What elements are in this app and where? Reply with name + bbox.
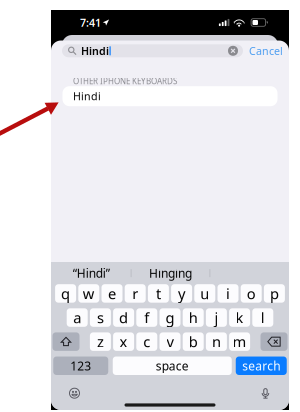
staticText: v <box>166 332 173 351</box>
button[interactable]: s <box>90 308 111 327</box>
button[interactable]: 123 <box>53 356 108 375</box>
staticText: Hindi <box>81 44 109 58</box>
staticText: j <box>214 308 218 327</box>
button[interactable]: h <box>183 308 204 327</box>
staticText: search <box>242 358 280 374</box>
staticText: k <box>236 308 244 327</box>
staticText: m <box>233 332 247 351</box>
button[interactable]: t <box>148 284 169 303</box>
staticText: l <box>261 308 265 327</box>
button[interactable]: a <box>67 308 88 327</box>
button[interactable]: n <box>206 332 227 351</box>
button[interactable]: z <box>90 332 111 351</box>
staticText: 7:41 <box>80 15 101 30</box>
button[interactable]: e <box>101 284 122 303</box>
staticText: z <box>97 332 104 351</box>
button[interactable]: l <box>252 308 273 327</box>
button[interactable]: c <box>136 332 157 351</box>
button[interactable]: Dictate <box>254 383 276 403</box>
button[interactable]: Delete <box>260 332 287 351</box>
staticText: d <box>119 308 128 327</box>
button[interactable]: u <box>194 284 215 303</box>
staticText: b <box>189 332 198 351</box>
button[interactable]: space <box>113 356 232 375</box>
staticText: t <box>156 284 161 303</box>
staticText: n <box>212 332 221 351</box>
button[interactable]: i <box>217 284 238 303</box>
staticText: OTHER IPHONE KEYBOARDS <box>73 76 177 86</box>
button[interactable]: Emoji <box>63 383 85 403</box>
staticText: p <box>270 284 279 303</box>
staticText: x <box>120 332 128 351</box>
staticText: q <box>61 284 70 303</box>
staticText: u <box>200 284 209 303</box>
button[interactable]: Hindi <box>62 86 277 106</box>
staticText: s <box>97 308 104 327</box>
button[interactable]: v <box>159 332 180 351</box>
button[interactable]: j <box>206 308 227 327</box>
staticText: h <box>189 308 198 327</box>
staticText: a <box>73 308 81 327</box>
button[interactable]: d <box>113 308 134 327</box>
button[interactable]: f <box>136 308 157 327</box>
staticText: c <box>143 332 150 351</box>
button[interactable]: o <box>241 284 262 303</box>
staticText: w <box>83 284 95 303</box>
staticText: 123 <box>70 358 91 374</box>
button[interactable]: w <box>78 284 99 303</box>
button[interactable]: y <box>171 284 192 303</box>
staticText: Cancel <box>249 44 283 58</box>
staticText: Hinging <box>149 265 192 281</box>
staticText: Hindi <box>73 89 101 103</box>
staticText: g <box>165 308 174 327</box>
staticText: space <box>156 358 189 374</box>
button[interactable]: Shift <box>52 332 79 351</box>
button[interactable]: Hinging <box>131 263 209 283</box>
staticText: f <box>144 308 149 327</box>
staticText: “Hindi” <box>73 265 110 281</box>
staticText: o <box>247 284 256 303</box>
button[interactable]: b <box>183 332 204 351</box>
button[interactable]: q <box>55 284 76 303</box>
staticText: i <box>226 284 230 303</box>
button[interactable]: p <box>264 284 285 303</box>
staticText: y <box>178 284 185 303</box>
staticText: r <box>132 284 138 303</box>
button[interactable]: “Hindi” <box>52 263 131 283</box>
button[interactable]: x <box>113 332 134 351</box>
button[interactable]: m <box>229 332 250 351</box>
button[interactable]: k <box>229 308 250 327</box>
button[interactable]: g <box>159 308 180 327</box>
staticText: e <box>108 284 116 303</box>
button[interactable]: search <box>236 356 287 375</box>
button[interactable]: Cancel <box>249 44 283 57</box>
button[interactable]: r <box>125 284 146 303</box>
